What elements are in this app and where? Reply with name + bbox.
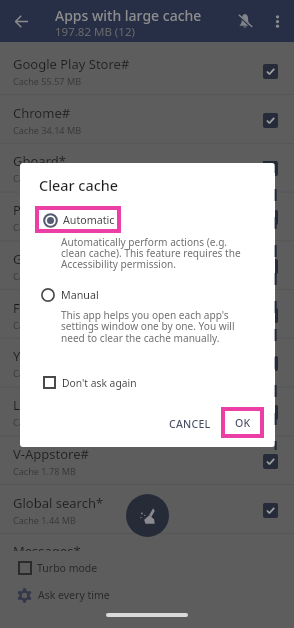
staticText: Manual [61,288,99,303]
staticText: YouTube# [13,347,74,365]
staticText: Cache 1.78 MB [13,465,76,477]
button[interactable]: More options [263,7,291,35]
staticText: Apps with large cache [55,6,202,25]
staticText: Cache 7.52 MB [13,367,76,379]
staticText: Cache 34.14 MB [13,124,82,136]
button[interactable]: V-Appstore# [0,436,294,485]
button[interactable]: Files* [0,290,294,339]
button[interactable]: Chrome# [0,95,294,144]
staticText: Photos# [13,201,64,219]
button[interactable]: CANCEL [163,411,216,437]
staticText: Automatic [63,213,115,228]
button[interactable]: Select V-Appstore# [250,441,290,481]
button[interactable]: Select Lens* [250,392,290,432]
button[interactable]: Automatic [35,206,121,233]
button[interactable]: Global search* [0,485,294,534]
staticText: Don't ask again [62,376,137,390]
staticText: Messages* [13,542,81,560]
staticText: Lens* [13,396,49,414]
staticText: Turbo mode [37,561,98,575]
button[interactable]: YouTube# [0,338,294,387]
staticText: CANCEL [169,417,211,431]
button[interactable]: Turbo mode [0,557,294,579]
staticText: Automatically perform actions (e.g. clea… [61,235,244,271]
staticText: This app helps you open each app's setti… [61,308,244,345]
button[interactable]: OK [221,407,264,438]
button[interactable]: Select Gboard* [250,148,290,188]
staticText: Cache 12.31 MB [13,270,82,282]
button[interactable]: Select YouTube# [250,343,290,383]
staticText: Chrome# [13,104,71,122]
button[interactable]: Back [0,0,42,42]
button[interactable]: Gboard* [0,143,294,192]
staticText: Cache 55.57 MB [13,75,82,87]
staticText: V-Appstore# [13,445,89,463]
staticText: Ask every time [38,588,110,602]
button[interactable]: Select Google Play Store# [250,51,290,91]
staticText: Global search* [13,494,104,512]
button[interactable]: Clean cache [126,494,169,537]
staticText: Cache 9.88 MB [13,319,76,331]
button[interactable]: Select Gmail# [250,246,290,286]
staticText: Cache 4.21 MB [13,416,76,428]
button[interactable]: Select Photos# [250,197,290,237]
staticText: Files* [13,299,48,317]
button[interactable]: Select Files* [250,295,290,335]
staticText: Cache 21.44 MB [13,172,82,184]
staticText: Gboard* [13,152,66,170]
button[interactable]: Photos# [0,192,294,241]
staticText: OK [235,416,251,430]
staticText: Cache 1.02 MB [13,562,76,574]
button[interactable]: Ask every time [0,584,294,606]
staticText: Gmail# [13,250,58,268]
button[interactable]: Notifications off [230,6,260,36]
staticText: Google Play Store# [13,55,130,73]
staticText: Cache 1.44 MB [13,514,76,526]
staticText: Clear cache [39,176,118,196]
staticText: 197.82 MB (12) [55,24,135,40]
button[interactable]: Select Global search* [250,490,290,530]
button[interactable]: Select Chrome# [250,100,290,140]
button[interactable]: Gmail# [0,241,294,290]
button[interactable]: Lens* [0,387,294,436]
button[interactable]: Google Play Store# [0,46,294,95]
button[interactable]: Messages* [0,533,294,582]
button[interactable]: Manual [20,285,275,306]
staticText: Cache 18.92 MB [13,221,82,233]
button[interactable]: Don't ask again [20,369,275,395]
